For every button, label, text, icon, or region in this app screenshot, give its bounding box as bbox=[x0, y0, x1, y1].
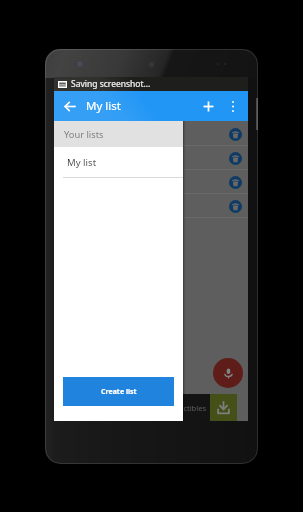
staticText: Saving screenshot… bbox=[71, 78, 151, 90]
button[interactable]: Delete bbox=[227, 150, 243, 166]
button[interactable]: My list bbox=[54, 147, 183, 177]
button[interactable]: Delete bbox=[54, 146, 248, 169]
staticText: Create list bbox=[101, 387, 137, 397]
button[interactable]: Delete bbox=[227, 198, 243, 214]
staticText: Your lists bbox=[64, 128, 104, 141]
button[interactable]: Download bbox=[210, 394, 237, 421]
button[interactable]: Voice input bbox=[213, 358, 243, 388]
button[interactable]: Navigate up bbox=[54, 91, 85, 121]
button[interactable]: Delete bbox=[54, 170, 248, 193]
button[interactable] bbox=[54, 218, 248, 241]
staticText: My list bbox=[86, 98, 121, 114]
button[interactable]: Create list bbox=[63, 377, 174, 406]
button[interactable]: Delete bbox=[54, 194, 248, 217]
button[interactable]: Delete bbox=[227, 126, 243, 142]
button[interactable]: Delete bbox=[54, 122, 248, 145]
staticText: My list bbox=[67, 156, 97, 169]
button[interactable]: More options bbox=[221, 91, 245, 121]
button[interactable]: Add list bbox=[195, 91, 221, 121]
staticText: Collectibles bbox=[166, 403, 206, 413]
button[interactable]: Delete bbox=[227, 174, 243, 190]
